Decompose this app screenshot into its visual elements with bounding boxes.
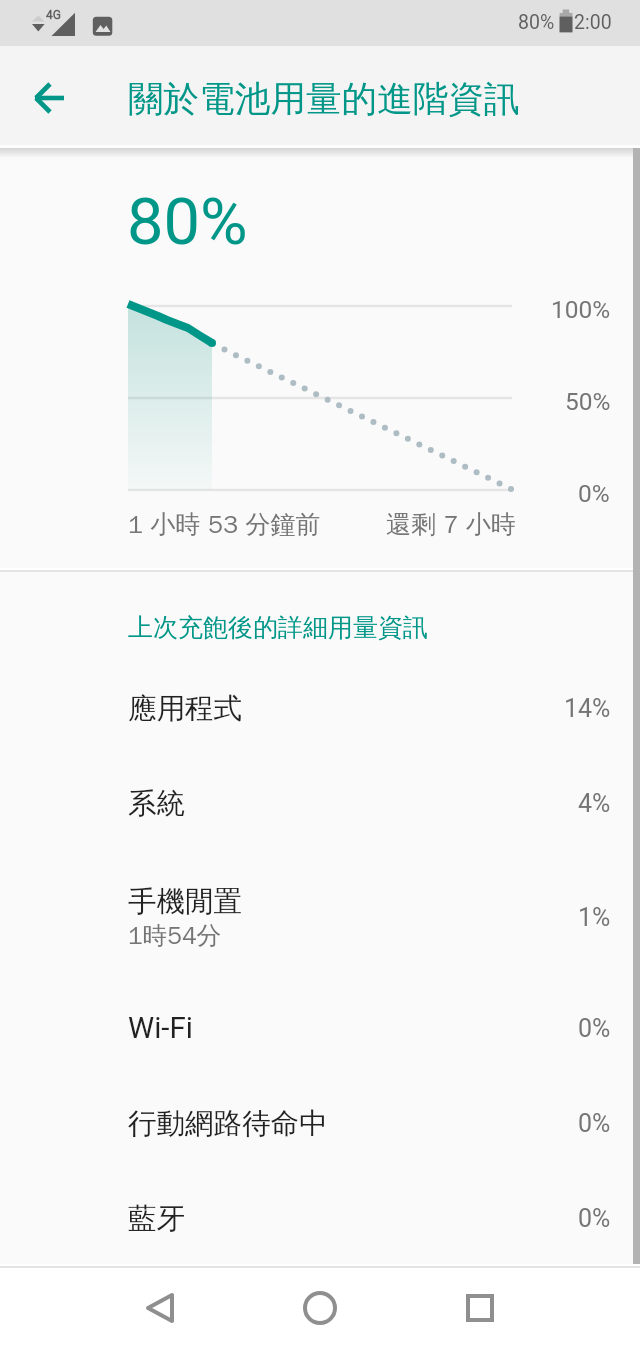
staticText: 4G	[46, 8, 61, 22]
staticText: 0%	[578, 479, 610, 508]
button[interactable]: 藍牙	[0, 1171, 640, 1266]
button[interactable]: 手機閒置	[0, 855, 640, 980]
staticText: 100%	[551, 295, 611, 324]
button[interactable]: 主畫面	[296, 1284, 344, 1332]
staticText: 80%	[127, 184, 248, 260]
staticText: 行動網路待命中	[128, 1106, 328, 1142]
staticText: 還剩 7 小時	[386, 509, 516, 540]
button[interactable]: 系統	[0, 756, 640, 851]
button[interactable]: 應用程式	[0, 661, 640, 756]
button[interactable]: 行動網路待命中	[0, 1076, 640, 1171]
staticText: 14%	[564, 694, 611, 723]
staticText: 0%	[578, 1014, 611, 1043]
button[interactable]: 返回	[24, 74, 72, 122]
staticText: 關於電池用量的進階資訊	[128, 77, 520, 122]
staticText: 4%	[578, 789, 611, 818]
button[interactable]: Wi-Fi	[0, 981, 640, 1076]
staticText: 80%	[518, 11, 555, 34]
staticText: 1時54分	[128, 920, 222, 951]
staticText: 手機閒置	[128, 884, 242, 920]
staticText: 2:00	[574, 11, 612, 34]
button[interactable]: 返回	[136, 1284, 184, 1332]
staticText: 應用程式	[128, 691, 242, 727]
staticText: 藍牙	[128, 1201, 185, 1237]
staticText: Wi-Fi	[128, 1011, 193, 1046]
staticText: 1 小時 53 分鐘前	[128, 509, 321, 540]
staticText: 上次充飽後的詳細用量資訊	[128, 612, 428, 643]
staticText: 0%	[578, 1109, 611, 1138]
staticText: 0%	[578, 1204, 611, 1233]
staticText: 1%	[578, 903, 611, 932]
button[interactable]: 最近使用的應用程式	[456, 1284, 504, 1332]
staticText: 50%	[565, 387, 611, 416]
staticText: 系統	[128, 786, 185, 822]
